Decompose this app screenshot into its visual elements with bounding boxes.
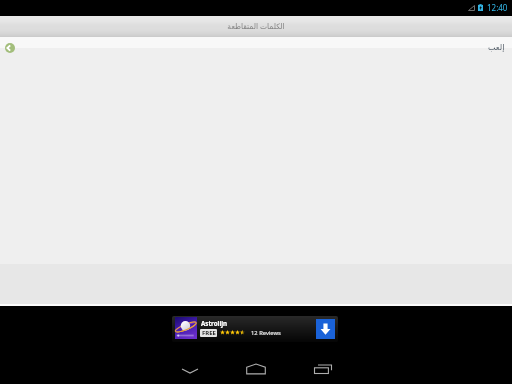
button[interactable]: Install [316, 319, 335, 339]
button[interactable]: Back [176, 357, 204, 384]
staticText: Astrolijn [201, 319, 228, 327]
staticText: FREE [202, 329, 216, 337]
button[interactable]: إلعب [478, 39, 505, 56]
button[interactable]: Astrolijn [172, 316, 338, 342]
staticText: 12 Reviews [251, 329, 281, 337]
button[interactable]: Recent apps [309, 355, 337, 383]
button[interactable]: Back [5, 43, 15, 53]
staticText: إلعب [488, 43, 505, 52]
staticText: 12:40 [487, 2, 508, 13]
staticText: الكلمات المتقاطعة [227, 21, 285, 31]
button[interactable]: Home [242, 355, 270, 383]
